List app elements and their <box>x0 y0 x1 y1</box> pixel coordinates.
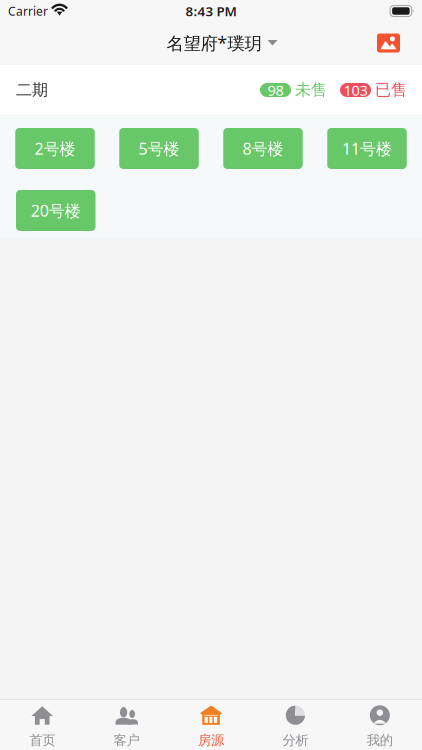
staticText: 103 <box>343 80 367 100</box>
staticText: 房源 <box>198 732 224 748</box>
staticText: 分析 <box>282 732 308 748</box>
button[interactable]: 2号楼 <box>15 128 95 169</box>
button[interactable]: 房源 <box>169 700 253 750</box>
button[interactable]: 20号楼 <box>16 190 95 231</box>
staticText: 已售 <box>375 80 407 100</box>
staticText: 二期 <box>16 80 48 100</box>
button[interactable]: 客户 <box>84 700 169 750</box>
button[interactable]: 首页 <box>0 700 84 750</box>
button[interactable]: 名望府*璞玥 <box>144 23 277 62</box>
button[interactable]: 11号楼 <box>327 128 407 169</box>
staticText: 11号楼 <box>342 138 392 159</box>
staticText: 未售 <box>295 80 327 100</box>
staticText: 2号楼 <box>34 138 75 159</box>
staticText: 客户 <box>114 732 140 748</box>
button[interactable]: 5号楼 <box>119 128 199 169</box>
staticText: 我的 <box>367 732 393 748</box>
staticText: 5号楼 <box>138 138 179 159</box>
staticText: 名望府*璞玥 <box>166 31 261 54</box>
staticText: 8:43 PM <box>185 2 236 20</box>
button[interactable]: Photos <box>377 25 422 60</box>
staticText: Carrier <box>8 3 48 19</box>
staticText: 20号楼 <box>31 200 81 221</box>
staticText: 8号楼 <box>242 138 283 159</box>
button[interactable]: 8号楼 <box>223 128 303 169</box>
staticText: 98 <box>267 80 283 100</box>
button[interactable]: 我的 <box>338 700 422 750</box>
button[interactable]: 分析 <box>253 700 338 750</box>
staticText: 首页 <box>29 732 55 748</box>
